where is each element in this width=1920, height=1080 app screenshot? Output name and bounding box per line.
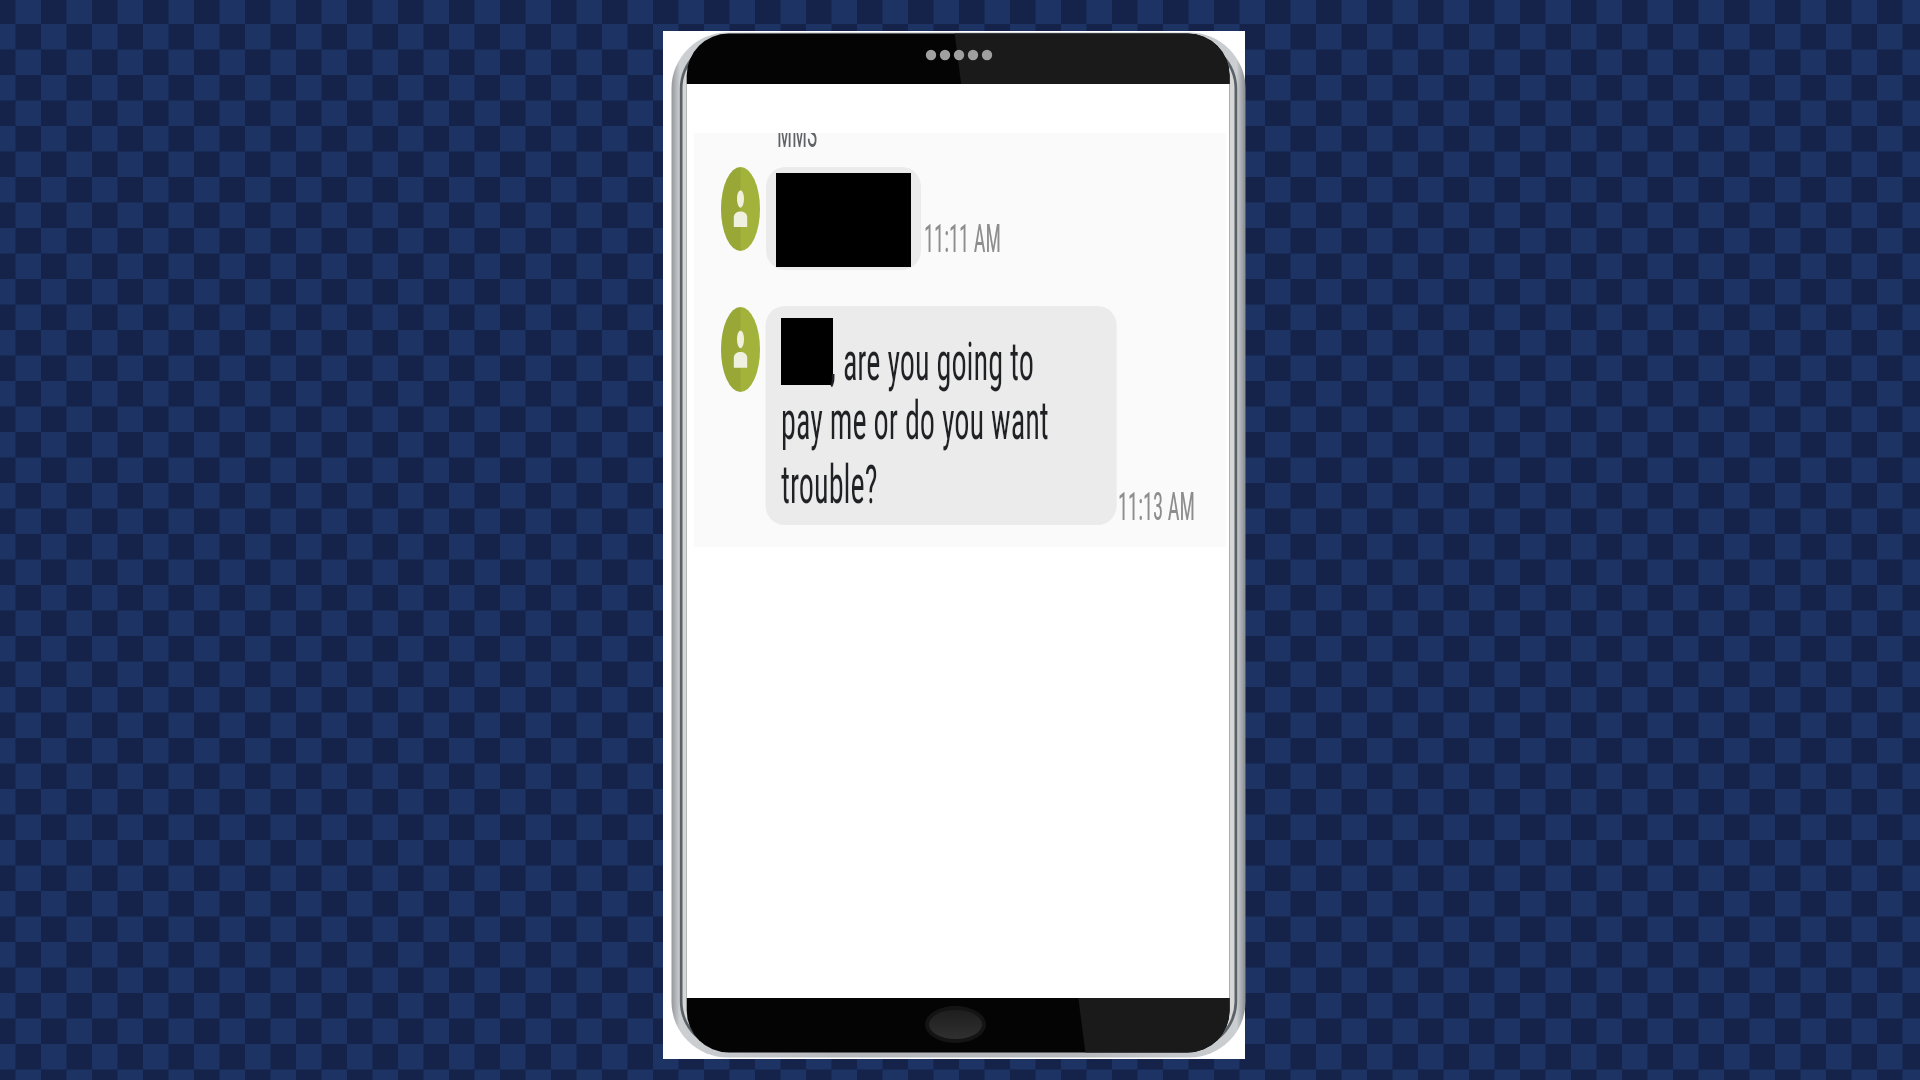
button[interactable]: 11:11 AM — [715, 160, 1015, 276]
staticText: 11:11 AM — [924, 216, 1002, 262]
staticText: , are you going to — [830, 330, 1034, 393]
staticText: MMS — [777, 133, 818, 152]
staticText: 11:13 AM — [1118, 484, 1196, 530]
button[interactable]: , are you going to — [715, 300, 1200, 532]
staticText: pay me or do you want trouble? — [781, 389, 1049, 516]
button[interactable]: Home — [925, 1006, 986, 1043]
